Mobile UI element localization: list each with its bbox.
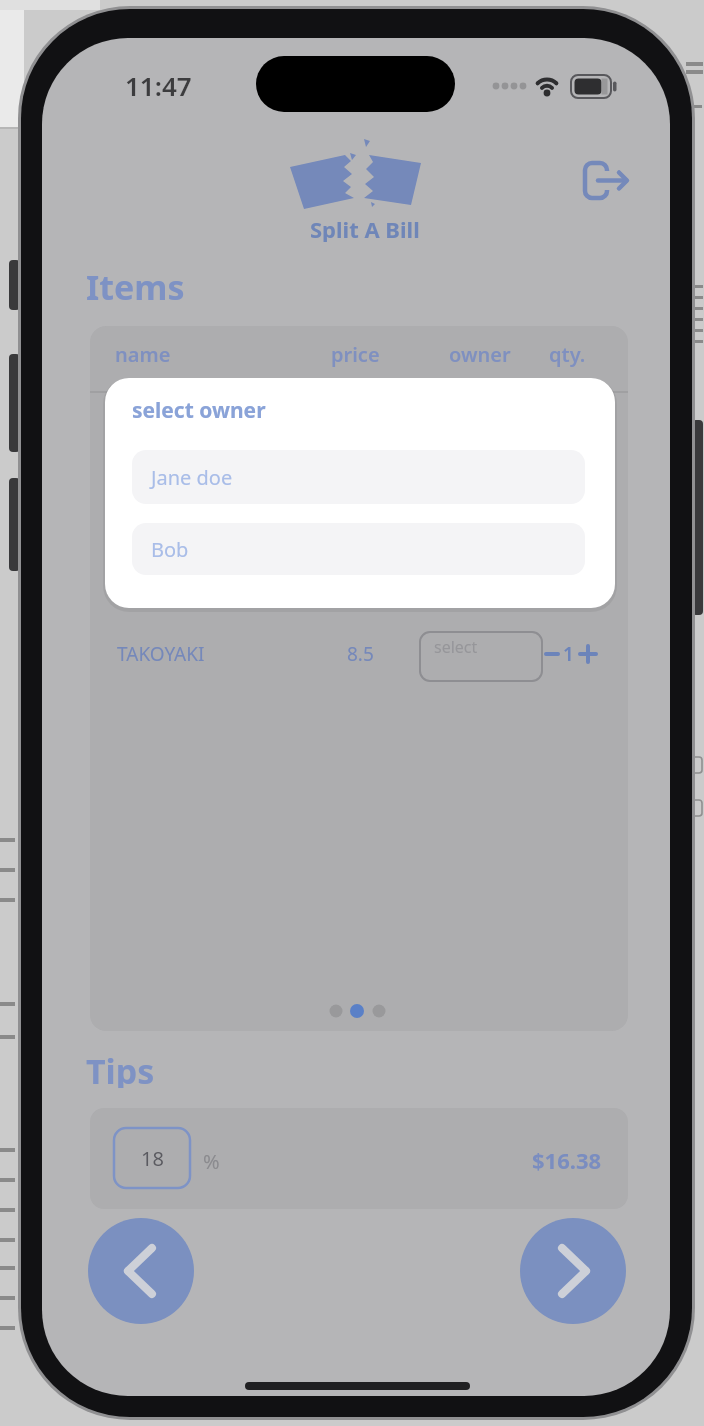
button[interactable] <box>420 632 542 681</box>
staticText: 8.5 <box>347 641 374 667</box>
button[interactable]: Jane doe <box>132 450 585 504</box>
staticText: % <box>203 1148 220 1175</box>
button[interactable] <box>578 154 632 204</box>
staticText: 11:47 <box>125 68 192 100</box>
staticText: $16.38 <box>532 1145 602 1175</box>
button[interactable] <box>88 1218 194 1324</box>
button[interactable]: Bob <box>132 523 585 575</box>
staticText: select owner <box>132 396 266 425</box>
button[interactable]: 18 <box>114 1128 190 1188</box>
staticText: TAKOYAKI <box>117 641 205 667</box>
staticText: qty. <box>549 341 586 368</box>
staticText: Bob <box>151 536 189 563</box>
staticText: 18 <box>141 1145 164 1172</box>
staticText: price <box>331 341 380 368</box>
staticText: select <box>434 636 478 658</box>
button[interactable] <box>520 1218 626 1324</box>
staticText: owner <box>449 341 511 368</box>
staticText: Tips <box>86 1048 155 1088</box>
staticText: Jane doe <box>151 464 233 491</box>
staticText: 1 <box>563 641 574 667</box>
staticText: Split A Bill <box>310 214 420 242</box>
staticText: Items <box>86 264 185 304</box>
staticText: name <box>115 341 171 368</box>
